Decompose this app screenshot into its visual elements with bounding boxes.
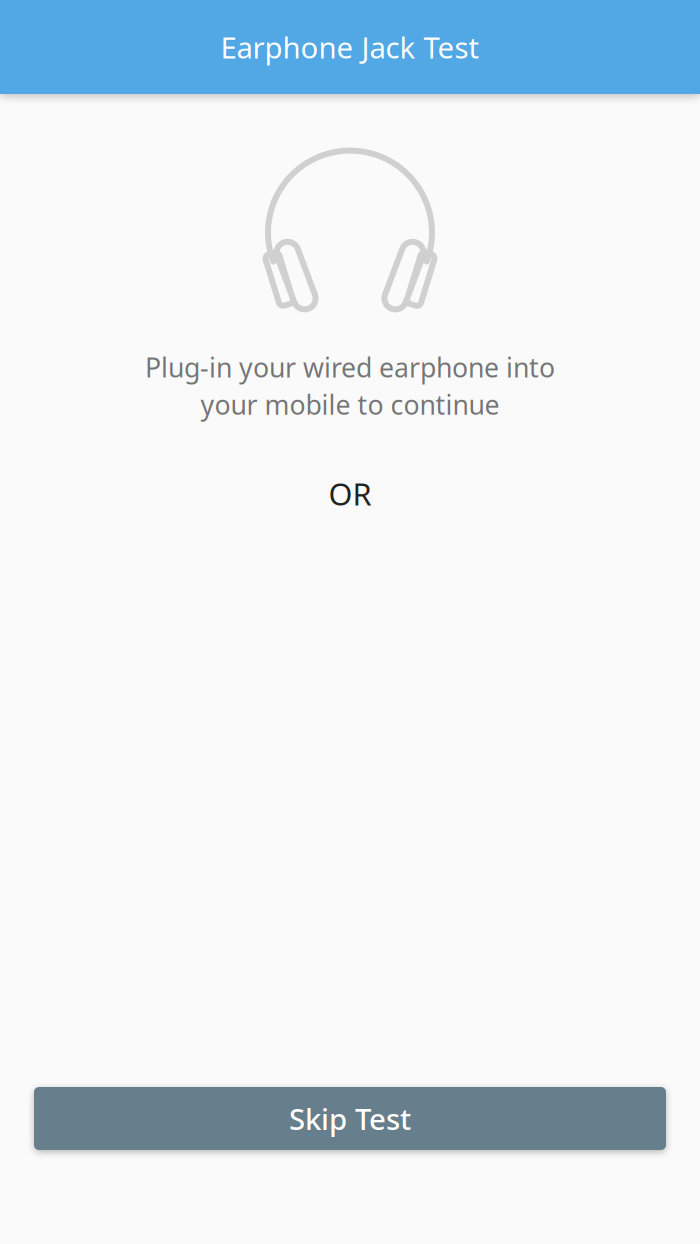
- staticText: Plug-in your wired earphone into: [145, 349, 555, 385]
- staticText: your mobile to continue: [200, 387, 499, 422]
- staticText: Earphone Jack Test: [220, 27, 479, 66]
- staticText: Skip Test: [289, 1099, 411, 1138]
- staticText: OR: [328, 473, 371, 514]
- button[interactable]: Skip Test: [34, 1087, 666, 1150]
